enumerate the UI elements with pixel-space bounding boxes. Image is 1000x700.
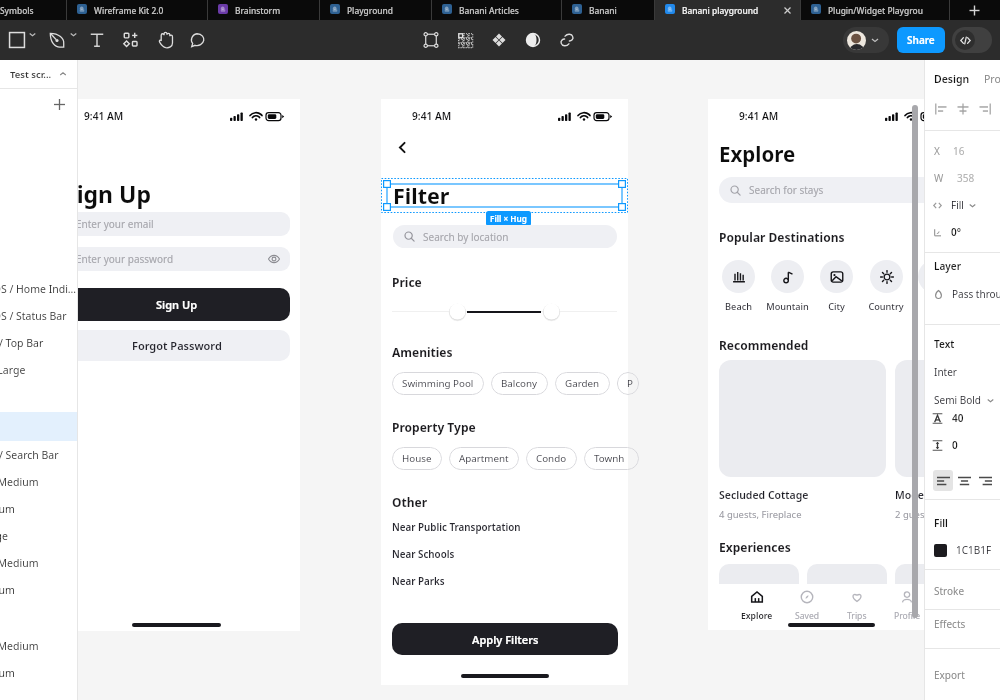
button[interactable]: Fill: [934, 515, 948, 531]
button[interactable]: Text / Medium: [0, 472, 77, 492]
button[interactable]: Secluded Cottage: [719, 360, 886, 521]
button[interactable]: Semi Bold: [934, 393, 981, 407]
button[interactable]: Text: [934, 336, 955, 352]
button[interactable]: [807, 564, 887, 618]
button[interactable]: [895, 564, 966, 618]
button[interactable]: Trips: [832, 584, 882, 630]
button[interactable]: Back: [392, 137, 412, 157]
button[interactable]: Country: [869, 260, 902, 313]
button[interactable]: Mountain: [771, 260, 804, 313]
button[interactable]: L: [918, 260, 951, 313]
button[interactable]: Swimming Pool: [392, 372, 484, 395]
button[interactable]: Test scr...: [0, 60, 77, 88]
button[interactable]: Plugin/Widget Playgrou: [800, 0, 949, 20]
button[interactable]: Price handle: [448, 302, 467, 321]
button[interactable]: Layer: [934, 258, 961, 274]
button[interactable]: Text align 2: [975, 470, 995, 491]
button[interactable]: Effects: [925, 615, 1000, 633]
staticText: Search for stays: [749, 183, 824, 197]
button[interactable]: Account: [843, 27, 889, 53]
button[interactable]: Medium: [0, 580, 77, 600]
button[interactable]: Near Schools: [392, 547, 639, 561]
button[interactable]: Add page: [51, 96, 67, 112]
button[interactable]: Stroke: [925, 582, 1000, 600]
button[interactable]: Profile: [882, 584, 932, 630]
button[interactable]: Banani playground: [654, 0, 800, 20]
button[interactable]: Title / Large: [0, 360, 77, 380]
button[interactable]: Large: [0, 526, 77, 546]
button[interactable]: Hand tool: [154, 28, 178, 52]
button[interactable]: Theme: [521, 28, 545, 52]
button[interactable]: [719, 564, 799, 618]
button[interactable]: City: [820, 260, 853, 313]
button[interactable]: Components: [119, 28, 143, 52]
button[interactable]: Frame tool: [5, 28, 29, 52]
button[interactable]: Text / Medium: [0, 553, 77, 573]
button[interactable]: Beach: [722, 260, 755, 313]
button[interactable]: Text / Medium: [0, 636, 77, 656]
button[interactable]: Select frame: [419, 28, 443, 52]
button[interactable]: Brainstorm: [207, 0, 319, 20]
button[interactable]: Forgot Password: [64, 330, 290, 361]
button[interactable]: Components library: [487, 28, 511, 52]
staticText: Trips: [847, 610, 867, 622]
button[interactable]: Search by location: [393, 225, 617, 248]
button[interactable]: Pass throu: [934, 286, 1000, 302]
button[interactable]: Text tool: [85, 28, 109, 52]
button[interactable]: Enter your password: [64, 247, 290, 271]
button[interactable]: Grid: [453, 28, 477, 52]
button[interactable]: Search for stays: [719, 177, 945, 203]
staticText: Nav / Search Bar: [0, 448, 59, 462]
button[interactable]: Playground: [319, 0, 431, 20]
button[interactable]: Near Parks: [392, 574, 639, 588]
button[interactable]: Inter: [934, 364, 957, 380]
button[interactable]: Townho: [584, 447, 639, 470]
button[interactable]: Pen tool: [45, 28, 69, 52]
button[interactable]: Near Public Transportation: [392, 520, 639, 534]
button[interactable]: Align 1: [952, 98, 974, 120]
button[interactable]: Medium: [0, 499, 77, 519]
button[interactable]: Explore: [731, 584, 782, 630]
button[interactable]: iOS / Status Bar: [0, 306, 77, 326]
button[interactable]: Nav / Search Bar: [0, 445, 77, 465]
staticText: 9:41 AM: [739, 109, 779, 123]
button[interactable]: Apartment: [449, 447, 519, 470]
staticText: Experiences: [719, 539, 791, 555]
button[interactable]: Align 2: [974, 98, 996, 120]
button[interactable]: Export: [925, 666, 1000, 684]
button[interactable]: 1C1B1F: [934, 542, 992, 558]
button[interactable]: Link: [555, 28, 579, 52]
button[interactable]: Sign Up: [64, 288, 290, 321]
button[interactable]: Symbols: [0, 0, 66, 20]
button[interactable]: Price handle: [542, 302, 561, 321]
button[interactable]: Fill: [951, 198, 964, 212]
button[interactable]: Wireframe Kit 2.0: [66, 0, 207, 20]
button[interactable]: Enter your email: [64, 212, 290, 236]
button[interactable]: iOS / Home Indi…: [0, 279, 77, 299]
button[interactable]: Align 0: [930, 98, 952, 120]
button[interactable]: Comment: [185, 28, 209, 52]
button[interactable]: Apply Filters: [392, 623, 618, 655]
button[interactable]: Medium: [0, 663, 77, 683]
button[interactable]: Garden: [555, 372, 610, 395]
staticText: Forgot Password: [132, 338, 222, 353]
button[interactable]: Nav / Top Bar: [0, 333, 77, 353]
button[interactable]: Dev mode: [952, 27, 992, 53]
button[interactable]: Modern Loft: [895, 360, 966, 521]
staticText: Garden: [565, 377, 600, 390]
button[interactable]: Text align 1: [954, 470, 974, 491]
button[interactable]: Saved: [782, 584, 832, 630]
button[interactable]: Prot: [984, 72, 1000, 86]
button[interactable]: House: [392, 447, 442, 470]
button[interactable]: Design: [934, 72, 970, 86]
button[interactable]: Text align 0: [933, 470, 953, 491]
button[interactable]: Balcony: [491, 372, 548, 395]
button[interactable]: Pa: [617, 372, 639, 395]
button[interactable]: Banani Articles: [431, 0, 561, 20]
button[interactable]: Banani: [561, 0, 654, 20]
button[interactable]: New tab: [949, 0, 1000, 20]
button[interactable]: Share: [897, 27, 945, 53]
button[interactable]: Condo: [526, 447, 577, 470]
